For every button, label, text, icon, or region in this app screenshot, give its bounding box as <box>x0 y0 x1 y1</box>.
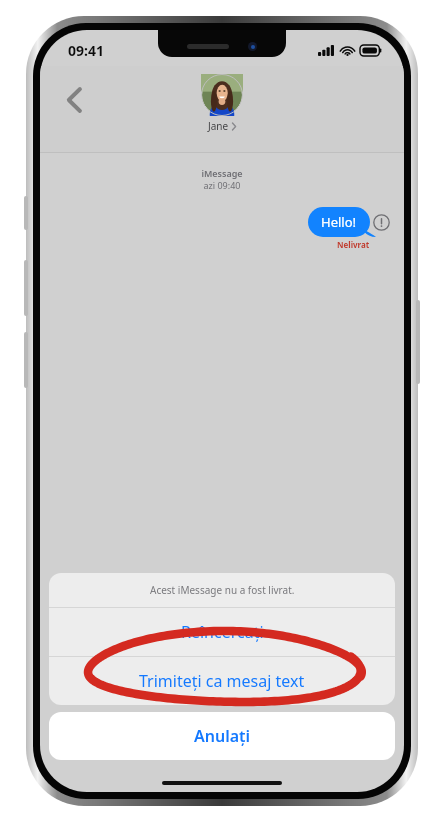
staticText: Anulați <box>194 725 251 747</box>
button[interactable]: Anulați <box>49 712 395 760</box>
button[interactable]: Jane <box>201 74 243 133</box>
staticText: Nelivrat <box>337 239 370 250</box>
button[interactable]: Not delivered <box>373 214 390 231</box>
staticText: Trimiteți ca mesaj text <box>139 670 305 692</box>
staticText: iMessage <box>40 167 404 179</box>
staticText: azi 09:40 <box>40 179 404 191</box>
button[interactable]: Back <box>54 80 94 120</box>
button[interactable]: Trimiteți ca mesaj text <box>49 657 395 705</box>
button[interactable]: Reîncercați <box>49 608 395 656</box>
staticText: Reîncercați <box>181 621 264 643</box>
staticText: Jane <box>208 119 229 133</box>
staticText: Hello! <box>321 213 357 231</box>
staticText: Acest iMessage nu a fost livrat. <box>150 583 295 597</box>
staticText: 09:41 <box>68 41 104 60</box>
